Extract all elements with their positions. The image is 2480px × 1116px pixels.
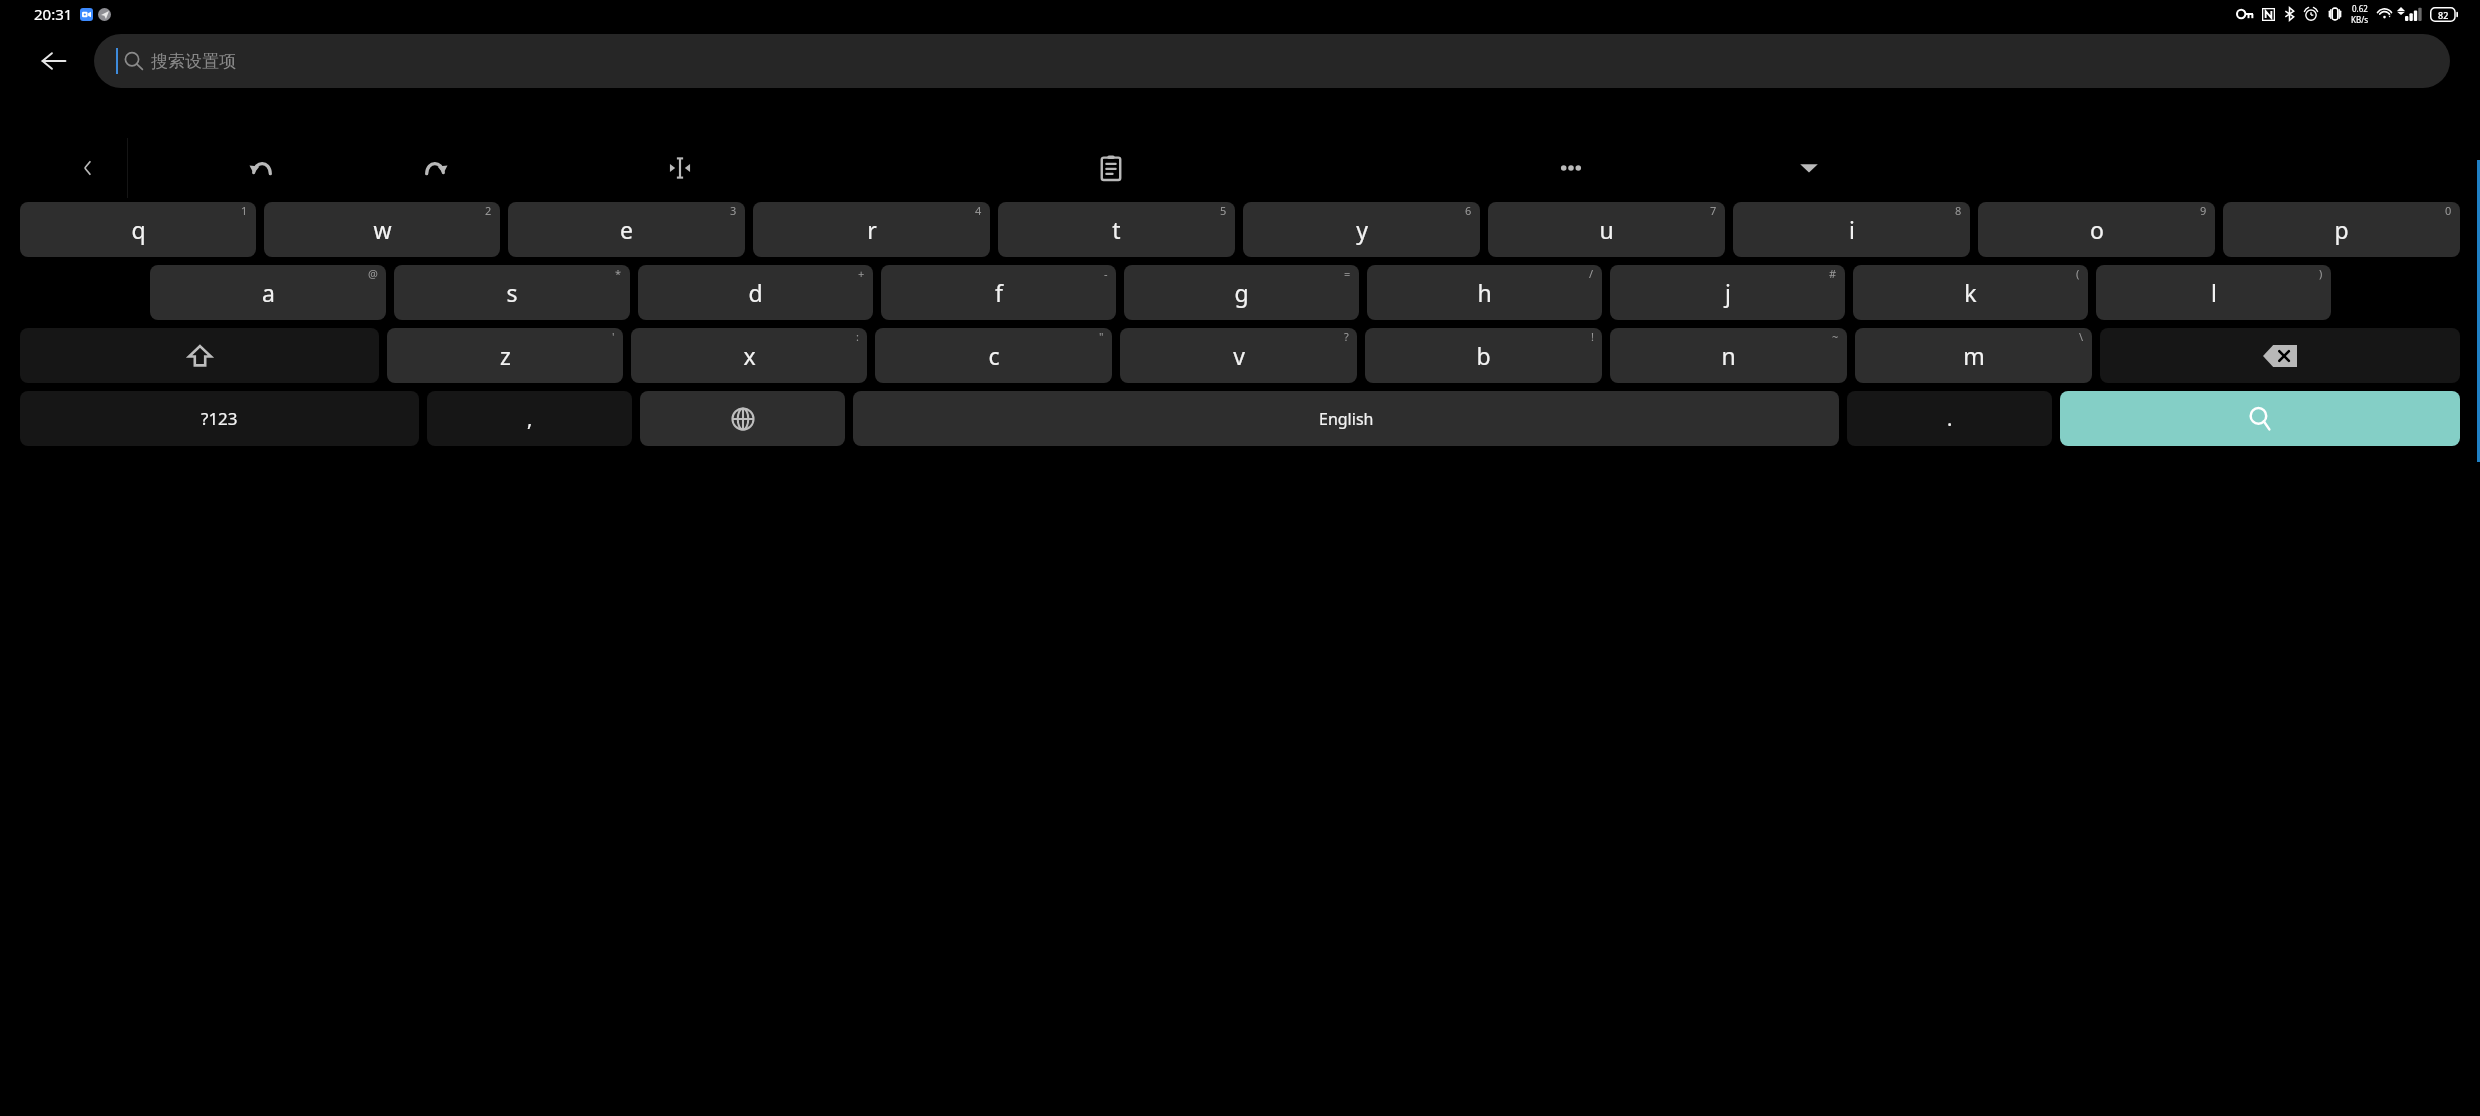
staticText: 2 [485,203,492,218]
staticText: + [858,266,865,281]
button[interactable]: Toolbar action [1085,142,1137,194]
button[interactable]: Toolbar action [1545,142,1597,194]
button[interactable]: m [1855,328,2092,383]
staticText: f [995,277,1003,308]
button[interactable]: b [1365,328,1602,383]
staticText: @ [368,266,378,281]
staticText: x [743,340,756,371]
staticText: 8 [1955,203,1962,218]
staticText: e [620,214,633,245]
button[interactable]: p [2223,202,2460,257]
staticText: English [1319,408,1374,430]
button[interactable]: Toolbar action [654,142,706,194]
staticText: 6 [1465,203,1472,218]
button[interactable]: h [1367,265,1602,320]
staticText: l [2211,277,2217,308]
button[interactable]: l [2096,265,2331,320]
staticText: 5 [1220,203,1227,218]
staticText: y [1356,214,1368,245]
staticText: ? [1344,329,1349,344]
staticText: g [1234,277,1249,308]
staticText: 3 [730,203,737,218]
staticText: : [856,329,859,344]
staticText: p [2334,214,2349,245]
staticText: 82 [2438,9,2449,21]
staticText: b [1476,340,1491,371]
staticText: . [1947,405,1953,432]
staticText: ~ [1832,329,1839,344]
button[interactable]: Search [2060,391,2460,446]
button[interactable]: Backspace [2100,328,2460,383]
button[interactable]: j [1610,265,1845,320]
staticText: n [1721,340,1736,371]
button[interactable]: t [998,202,1235,257]
button[interactable]: q [20,202,256,257]
button[interactable]: n [1610,328,1847,383]
staticText: 9 [2200,203,2207,218]
button[interactable]: s [394,265,630,320]
button[interactable]: x [631,328,867,383]
button[interactable]: e [508,202,745,257]
button[interactable]: Toolbar action [1783,142,1835,194]
staticText: a [262,277,275,308]
staticText: ! [1591,329,1594,344]
button[interactable]: Space [853,391,1839,446]
staticText: ( [2076,266,2080,281]
staticText: j [1725,277,1731,308]
button[interactable]: i [1733,202,1970,257]
staticText: w [373,214,392,245]
staticText: 4 [975,203,982,218]
staticText: k [1964,277,1977,308]
staticText: 0.62 [2352,3,2368,14]
button[interactable]: f [881,265,1116,320]
button[interactable]: k [1853,265,2088,320]
button[interactable]: r [753,202,990,257]
staticText: o [2090,214,2104,245]
button[interactable]: z [387,328,623,383]
button[interactable]: 搜索设置项 [94,34,2450,88]
staticText: 7 [1710,203,1717,218]
button[interactable]: Change language [640,391,845,446]
staticText: r [867,214,877,245]
staticText: 搜索设置项 [151,51,236,72]
button[interactable]: Toolbar action [409,142,461,194]
staticText: v [1233,340,1245,371]
staticText: 0 [2445,203,2452,218]
staticText: " [1099,329,1104,344]
staticText: KB/s [2351,14,2368,25]
staticText: 1 [241,203,248,218]
button[interactable]: Shift [20,328,379,383]
button[interactable]: Toolbar action [236,142,288,194]
button[interactable]: w [264,202,500,257]
button[interactable]: Back [28,35,80,87]
button[interactable]: Symbols [20,391,419,446]
staticText: c [988,340,1000,371]
button[interactable]: d [638,265,873,320]
staticText: # [1829,266,1837,281]
staticText: \ [2079,329,2084,344]
button[interactable]: y [1243,202,1480,257]
button[interactable]: g [1124,265,1359,320]
staticText: h [1477,277,1492,308]
staticText: s [506,277,518,308]
staticText: d [748,277,763,308]
staticText: - [1104,266,1108,281]
staticText: ) [2319,266,2323,281]
button[interactable]: c [875,328,1112,383]
button[interactable]: Period [1847,391,2052,446]
button[interactable]: a [150,265,386,320]
staticText: , [527,405,533,432]
staticText: t [1112,214,1121,245]
staticText: z [500,340,511,371]
staticText: / [1589,266,1594,281]
staticText: ?123 [201,407,238,430]
button[interactable]: o [1978,202,2215,257]
staticText: ' [612,329,615,344]
button[interactable]: Toolbar action [62,142,114,194]
button[interactable]: Comma [427,391,632,446]
button[interactable]: v [1120,328,1357,383]
staticText: u [1599,214,1614,245]
staticText: i [1849,214,1855,245]
staticText: q [131,214,146,245]
button[interactable]: u [1488,202,1725,257]
